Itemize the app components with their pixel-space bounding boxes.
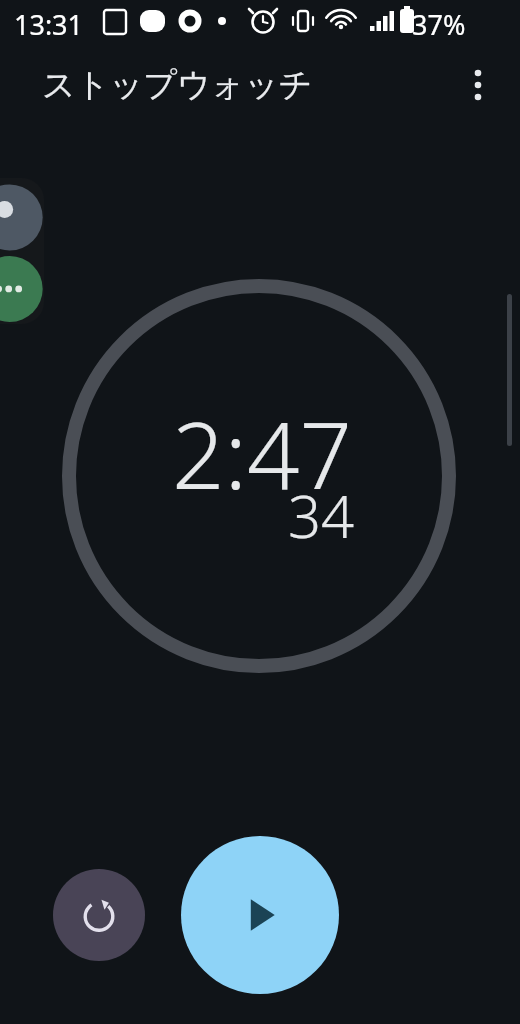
staticText: 37% (412, 6, 466, 43)
staticText: ストップウォッチ (42, 64, 313, 106)
staticText: 34 (288, 476, 355, 555)
button[interactable]: Floating bubbles (0, 178, 44, 324)
button[interactable]: Reset (53, 869, 145, 961)
staticText: 13:31 (14, 6, 84, 43)
button[interactable]: More options (450, 57, 506, 113)
staticText: 2:47 (172, 391, 353, 516)
button[interactable]: Start (181, 836, 339, 994)
